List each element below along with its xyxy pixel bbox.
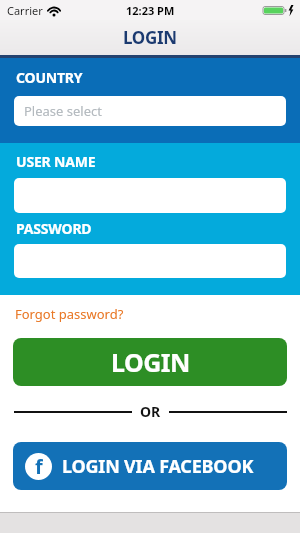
staticText: LOGIN VIA FACEBOOK bbox=[62, 454, 254, 479]
staticText: Carrier bbox=[7, 3, 43, 18]
staticText: 12:23 PM bbox=[126, 3, 175, 18]
staticText: f bbox=[35, 453, 43, 478]
staticText: Forgot password? bbox=[15, 305, 124, 323]
staticText: PASSWORD bbox=[16, 219, 92, 238]
button[interactable] bbox=[14, 244, 286, 278]
staticText: Please select bbox=[24, 102, 102, 120]
button[interactable]: Please select bbox=[14, 96, 286, 126]
staticText: LOGIN bbox=[123, 26, 177, 49]
button[interactable]: Forgot password? bbox=[15, 305, 124, 323]
button[interactable]: LOGIN bbox=[13, 338, 287, 386]
staticText: USER NAME bbox=[16, 152, 96, 171]
button[interactable]: f bbox=[13, 442, 287, 490]
button[interactable] bbox=[14, 178, 286, 213]
staticText: LOGIN bbox=[111, 345, 190, 379]
staticText: OR bbox=[140, 402, 161, 421]
staticText: COUNTRY bbox=[16, 68, 83, 87]
